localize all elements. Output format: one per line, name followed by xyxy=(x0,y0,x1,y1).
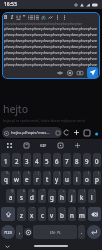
button[interactable]: “ xyxy=(21,12,27,22)
staticText: { xyxy=(88,171,90,175)
button[interactable]: Space xyxy=(33,225,77,239)
button[interactable]: d xyxy=(28,189,36,203)
button[interactable]: r xyxy=(33,171,41,185)
staticText: n xyxy=(70,211,74,219)
button[interactable]: 8 xyxy=(73,153,81,167)
staticText: hejto.pl/wpis/mas… xyxy=(11,130,50,136)
staticText: 16:53 xyxy=(4,1,17,8)
button[interactable] xyxy=(27,12,33,22)
button[interactable]: . xyxy=(78,225,85,239)
button[interactable]: j xyxy=(68,189,76,203)
staticText: płwepłwepłwepłwepłwepłwepłwepłwepłwepłwe xyxy=(4,56,98,62)
button[interactable]: hejto.pl/wpis/mas… xyxy=(2,127,62,138)
button[interactable]: Backspace xyxy=(88,207,101,221)
staticText: I xyxy=(11,14,13,21)
staticText: j xyxy=(71,193,73,201)
button[interactable]: 4 xyxy=(33,153,41,167)
button[interactable]: Tabs xyxy=(82,128,91,137)
staticText: k xyxy=(80,193,84,201)
staticText: b xyxy=(60,211,64,219)
button[interactable]: h xyxy=(58,189,66,203)
button[interactable]: 1 xyxy=(1,153,10,167)
staticText: B xyxy=(4,14,8,21)
button[interactable] xyxy=(54,12,61,22)
button[interactable]: New tab xyxy=(72,128,81,137)
staticText: p xyxy=(95,175,99,183)
staticText: g xyxy=(50,193,54,201)
staticText: q xyxy=(4,175,8,183)
button[interactable]: 5 xyxy=(43,153,51,167)
staticText: . xyxy=(81,229,83,236)
staticText: 9 xyxy=(85,157,89,165)
button[interactable]: Send xyxy=(87,67,98,78)
button[interactable]: i xyxy=(73,171,81,185)
button[interactable]: Shift xyxy=(1,207,15,221)
button[interactable]: 7 xyxy=(63,153,71,167)
button[interactable]: e xyxy=(23,171,31,185)
button[interactable]: More settings xyxy=(69,139,86,151)
button[interactable]: v xyxy=(48,207,56,221)
button[interactable]: Attach image xyxy=(75,68,84,77)
button[interactable]: n xyxy=(68,207,76,221)
staticText: płwepłwepłwepłwepłwepłwepłwepłwepłwepłwe xyxy=(4,26,98,32)
button[interactable]: w xyxy=(12,171,21,185)
button[interactable] xyxy=(47,12,54,22)
button[interactable]: 9 xyxy=(83,153,91,167)
staticText: % xyxy=(6,171,9,175)
staticText: f xyxy=(41,193,44,201)
button[interactable]: GIF xyxy=(35,139,52,151)
button[interactable]: z xyxy=(17,207,26,221)
button[interactable]: 🖇 xyxy=(40,12,47,22)
button[interactable] xyxy=(33,12,40,22)
button[interactable]: , xyxy=(16,225,23,239)
button[interactable]: 3 xyxy=(23,153,31,167)
staticText: : xyxy=(54,207,55,211)
button[interactable]: b xyxy=(58,207,66,221)
button[interactable]: p xyxy=(93,171,101,185)
button[interactable]: c xyxy=(38,207,46,221)
staticText: ? xyxy=(83,207,85,211)
button[interactable]: Apps xyxy=(1,139,18,151)
button[interactable]: 0 xyxy=(93,153,101,167)
button[interactable]: l xyxy=(88,189,96,203)
staticText: u xyxy=(65,175,69,183)
button[interactable]: Emoji xyxy=(65,68,74,77)
staticText: płwepłwepłwepłwepłwepłwepłwepłwepłwepłwe xyxy=(4,38,98,44)
button[interactable]: y xyxy=(53,171,61,185)
button[interactable]: x xyxy=(28,207,36,221)
button[interactable]: Profile xyxy=(91,128,100,137)
button[interactable]: t xyxy=(43,171,51,185)
button[interactable] xyxy=(15,12,21,22)
button[interactable]: Preview xyxy=(55,68,64,77)
button[interactable]: s xyxy=(17,189,26,203)
button[interactable]: q xyxy=(1,171,10,185)
staticText: o xyxy=(85,175,89,183)
button[interactable]: 2 xyxy=(12,153,21,167)
button[interactable]: m xyxy=(78,207,86,221)
button[interactable]: Hide keyboard xyxy=(3,242,11,250)
staticText: ; xyxy=(64,207,65,211)
button[interactable] xyxy=(61,12,68,22)
button[interactable]: 6 xyxy=(53,153,61,167)
button[interactable]: ?123 xyxy=(1,225,15,239)
button[interactable]: u xyxy=(63,171,71,185)
button[interactable]: a xyxy=(6,189,15,203)
button[interactable]: Clipboard xyxy=(18,139,35,151)
staticText: - xyxy=(54,189,55,193)
button[interactable]: g xyxy=(48,189,56,203)
staticText: < xyxy=(68,171,70,175)
button[interactable]: B xyxy=(3,12,9,22)
button[interactable]: k xyxy=(78,189,86,203)
button[interactable]: I xyxy=(9,12,15,22)
button[interactable]: Enter xyxy=(87,225,101,239)
staticText: z xyxy=(20,211,23,219)
button[interactable]: Emoji xyxy=(24,228,32,236)
button[interactable]: Stickers xyxy=(52,139,69,151)
button[interactable]: Reload xyxy=(62,128,71,137)
staticText: plwepłwepłwepłwepłwepłwepłwepłwepłwepłwe… xyxy=(4,22,82,26)
staticText: 8 xyxy=(75,157,79,165)
button[interactable]: o xyxy=(83,171,91,185)
staticText: r xyxy=(36,175,39,183)
button[interactable]: f xyxy=(38,189,46,203)
